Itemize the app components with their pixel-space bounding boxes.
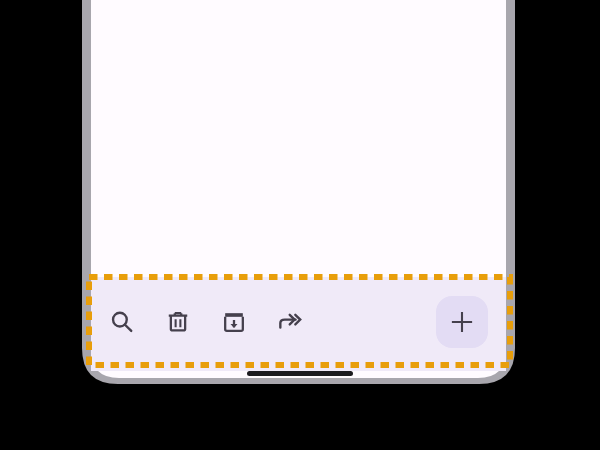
button[interactable]: Add [436, 296, 488, 348]
button[interactable]: Forward [266, 298, 314, 346]
button[interactable]: Archive [210, 298, 258, 346]
button[interactable]: Search [98, 298, 146, 346]
button[interactable]: Delete [154, 298, 202, 346]
